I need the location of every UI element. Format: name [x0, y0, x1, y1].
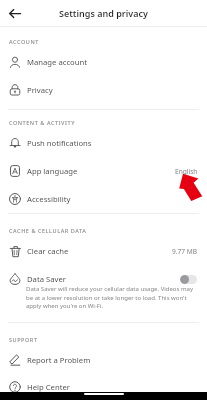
staticText: Privacy — [27, 85, 53, 95]
staticText: SUPPORT — [9, 336, 38, 343]
button[interactable]: Help Center — [0, 374, 207, 400]
staticText: CACHE & CELLULAR DATA — [9, 227, 87, 234]
button[interactable]: Back — [5, 3, 25, 23]
button[interactable]: Accessibility — [0, 185, 207, 213]
button[interactable]: Report a Problem — [0, 346, 207, 374]
staticText: Report a Problem — [27, 355, 91, 365]
button[interactable]: Data Saver — [0, 265, 207, 322]
button[interactable]: Clear cache — [0, 237, 207, 265]
staticText: Data Saver — [27, 274, 66, 284]
staticText: Clear cache — [27, 246, 69, 256]
button[interactable]: Privacy — [0, 76, 207, 104]
staticText: Manage account — [27, 57, 88, 67]
staticText: Settings and privacy — [59, 7, 148, 19]
staticText: English — [175, 167, 198, 176]
staticText: Accessibility — [27, 194, 71, 204]
button[interactable]: Push notifications — [0, 129, 207, 157]
staticText: CONTENT & ACTIVITY — [9, 119, 75, 126]
staticText: 9.77 MB — [172, 247, 198, 256]
button[interactable]: App language — [0, 157, 207, 185]
staticText: Data Saver will reduce your cellular dat… — [26, 285, 196, 309]
staticText: Help Center — [27, 382, 70, 392]
staticText: App language — [27, 166, 78, 176]
staticText: ACCOUNT — [9, 38, 39, 45]
staticText: Push notifications — [27, 138, 92, 148]
button[interactable]: Manage account — [0, 48, 207, 76]
